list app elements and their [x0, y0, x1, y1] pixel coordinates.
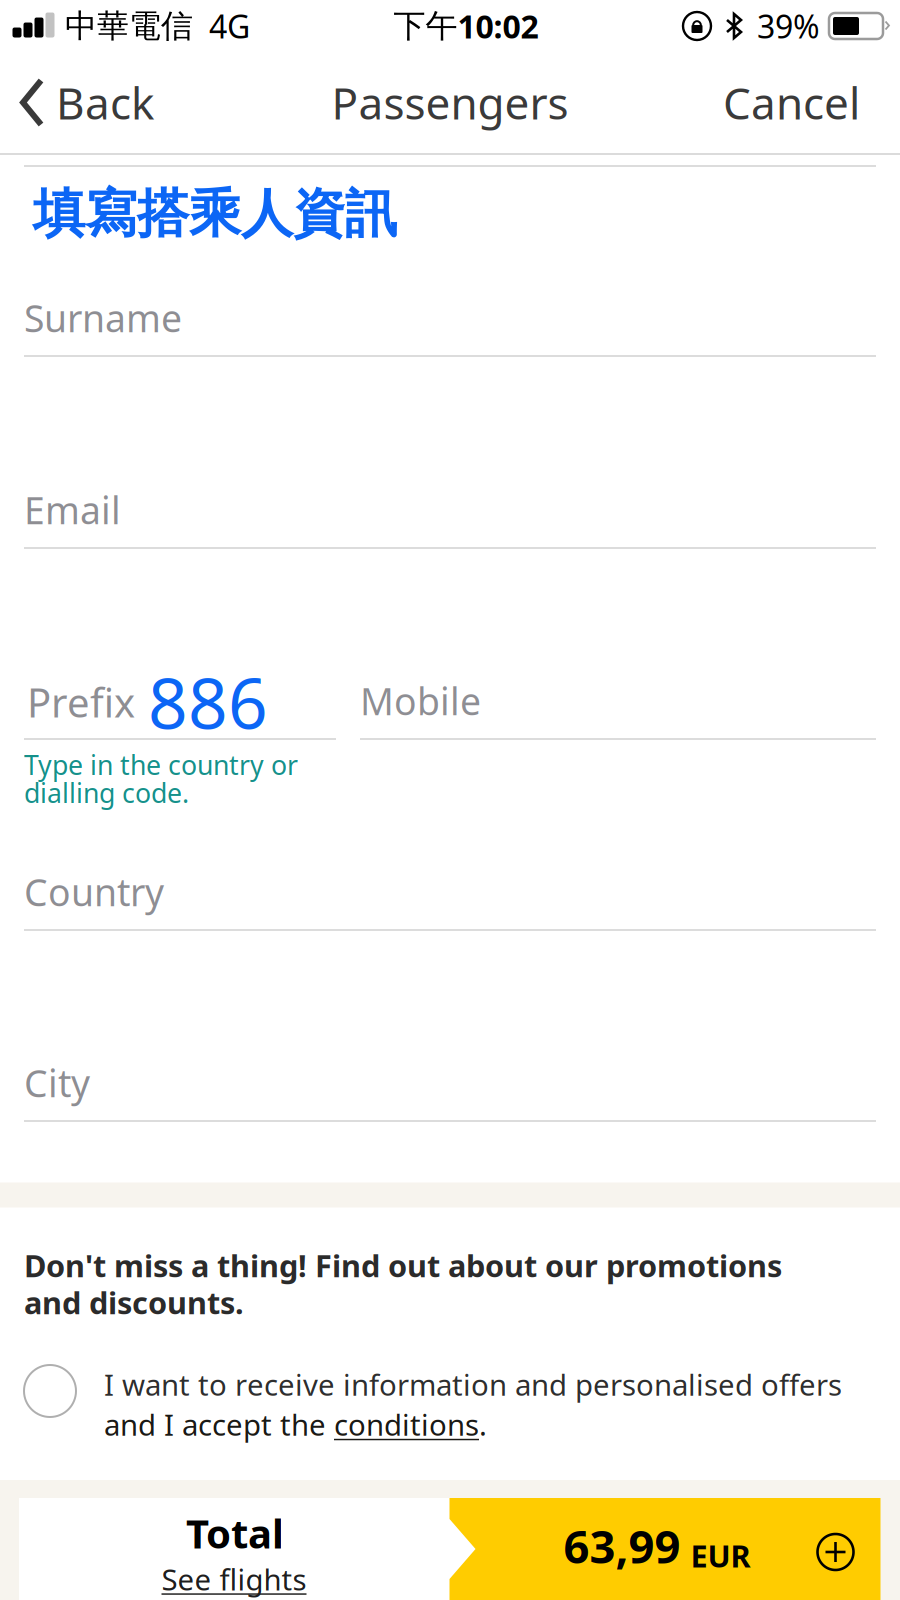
staticText: Cancel	[723, 73, 860, 132]
staticText: EUR	[690, 1535, 750, 1576]
staticText: Total	[186, 1506, 284, 1559]
staticText: 886	[148, 656, 268, 748]
staticText: 63,99	[563, 1516, 680, 1576]
button[interactable]: 63,99	[449, 1498, 880, 1600]
button[interactable]: Surname	[24, 293, 876, 357]
button[interactable]: Country	[24, 867, 876, 931]
staticText: Mobile	[360, 676, 481, 726]
staticText: and discounts.	[24, 1282, 244, 1323]
staticText: 4G	[209, 5, 250, 47]
button[interactable]: City	[24, 1058, 876, 1122]
staticText: Email	[24, 485, 121, 535]
staticText: 39%	[757, 5, 820, 47]
staticText: dialling code.	[24, 775, 189, 810]
staticText: 下午	[393, 6, 457, 46]
staticText: See flights	[161, 1559, 306, 1598]
button[interactable]: Back	[0, 52, 170, 153]
staticText: Back	[56, 73, 154, 132]
button[interactable]: Mobile	[360, 676, 876, 740]
staticText: Don't miss a thing! Find out about our p…	[24, 1245, 782, 1286]
staticText: 填寫搭乘人資訊	[33, 182, 397, 246]
button[interactable]: Cancel	[701, 52, 900, 153]
staticText: Surname	[24, 293, 182, 343]
button[interactable]: I want to receive information and person…	[24, 1365, 876, 1465]
staticText: and I accept the conditions.	[104, 1405, 487, 1444]
staticText: I want to receive information and person…	[104, 1365, 842, 1404]
staticText: City	[24, 1058, 90, 1108]
staticText: Prefix	[27, 675, 135, 728]
staticText: Type in the country or	[24, 747, 298, 782]
staticText: Passengers	[331, 73, 568, 132]
staticText: 10:02	[457, 5, 538, 47]
button[interactable]: Total	[19, 1498, 477, 1600]
staticText: Country	[24, 867, 164, 917]
button[interactable]: Email	[24, 485, 876, 549]
button[interactable]: Prefix	[24, 668, 336, 748]
staticText: 中華電信	[65, 6, 193, 46]
